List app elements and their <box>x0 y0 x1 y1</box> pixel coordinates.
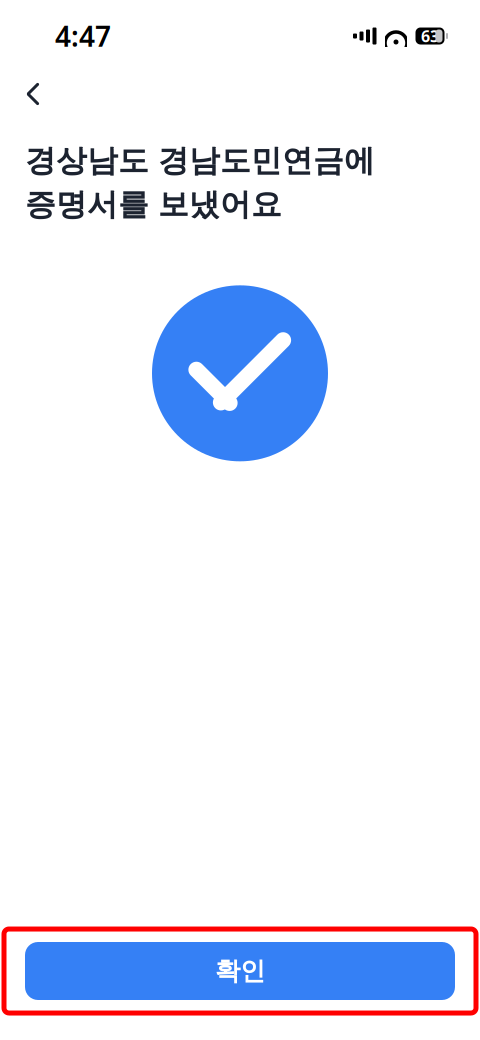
staticText: 경상남도 경남도민연금에 <box>25 142 375 180</box>
button[interactable]: Back <box>10 72 56 116</box>
staticText: 확인 <box>215 955 265 986</box>
staticText: 증명서를 보냈어요 <box>25 186 282 223</box>
button[interactable]: 확인 <box>25 942 455 1000</box>
staticText: 63 <box>421 25 439 47</box>
staticText: 4:47 <box>55 17 111 55</box>
